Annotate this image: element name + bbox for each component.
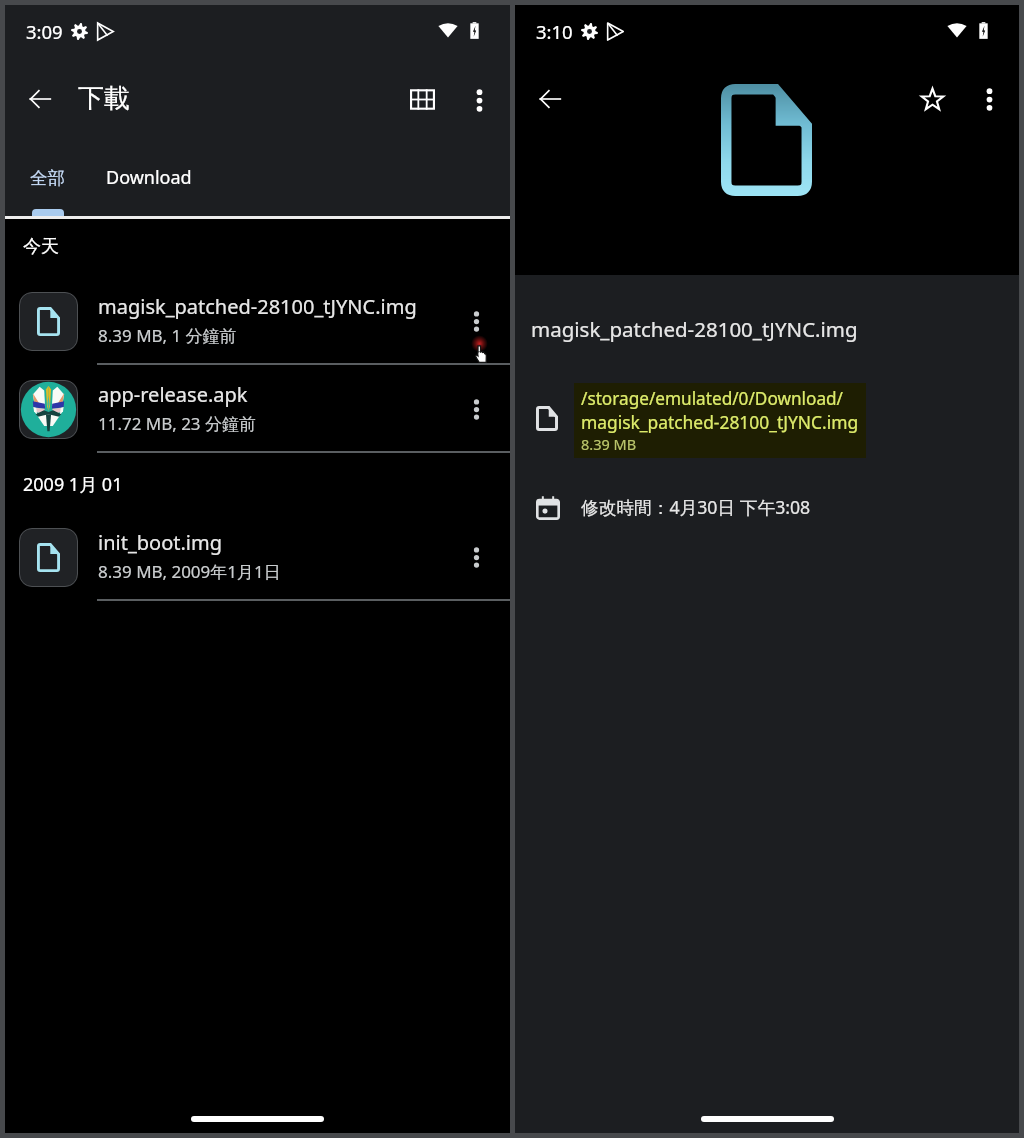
staticText: 今天 bbox=[23, 235, 59, 258]
staticText: /storage/emulated/0/Download/ bbox=[581, 387, 844, 410]
button[interactable]: /storage/emulated/0/Download/ bbox=[581, 387, 859, 454]
button[interactable]: 全部 bbox=[11, 150, 84, 205]
staticText: magisk_patched-28100_tJYNC.img bbox=[581, 410, 859, 434]
button[interactable]: Back bbox=[17, 76, 63, 122]
button[interactable]: Grid view bbox=[399, 76, 445, 122]
staticText: 修改時間：4月30日 下午3:08 bbox=[581, 495, 811, 519]
staticText: 3:09 bbox=[26, 19, 63, 44]
staticText: 全部 bbox=[30, 167, 65, 189]
button[interactable]: More options bbox=[966, 76, 1012, 122]
staticText: 2009 1月 01 bbox=[23, 472, 123, 497]
staticText: 8.39 MB, 2009年1月1日 bbox=[98, 560, 281, 583]
button[interactable]: app-release.apk bbox=[5, 365, 510, 453]
staticText: Download bbox=[106, 165, 192, 190]
staticText: magisk_patched-28100_tJYNC.img bbox=[531, 315, 858, 343]
button[interactable]: More options bbox=[453, 298, 499, 344]
button[interactable]: Download bbox=[101, 150, 197, 205]
staticText: 8.39 MB bbox=[581, 434, 637, 454]
button[interactable]: magisk_patched-28100_tJYNC.img bbox=[5, 277, 510, 365]
staticText: app-release.apk bbox=[98, 381, 248, 408]
staticText: 下載 bbox=[78, 82, 130, 115]
staticText: 3:10 bbox=[536, 19, 573, 44]
button[interactable]: More options bbox=[453, 386, 499, 432]
button[interactable]: More options bbox=[453, 534, 499, 580]
staticText: 11.72 MB, 23 分鐘前 bbox=[98, 412, 257, 435]
staticText: magisk_patched-28100_tJYNC.img bbox=[98, 293, 417, 320]
staticText: init_boot.img bbox=[98, 529, 223, 556]
staticText: 8.39 MB, 1 分鐘前 bbox=[98, 324, 237, 347]
button[interactable]: Add to favourites bbox=[909, 76, 955, 122]
button[interactable]: More options bbox=[456, 77, 502, 123]
button[interactable]: init_boot.img bbox=[5, 513, 510, 601]
button[interactable]: Back bbox=[527, 76, 573, 122]
